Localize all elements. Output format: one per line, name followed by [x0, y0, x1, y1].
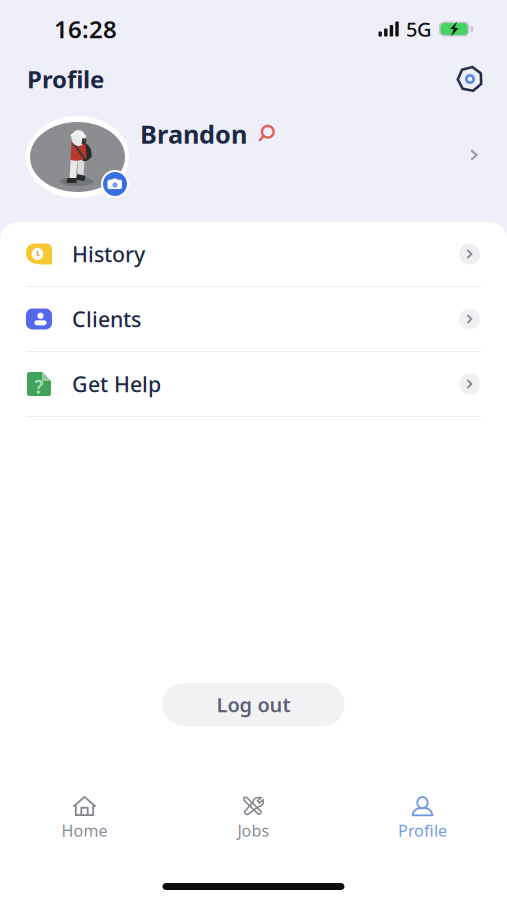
- staticText: Get Help: [72, 370, 161, 398]
- button[interactable]: Profile: [338, 797, 507, 843]
- staticText: 5G: [406, 16, 432, 42]
- staticText: Home: [61, 820, 107, 841]
- staticText: Profile: [398, 820, 447, 841]
- staticText: History: [72, 240, 145, 268]
- button[interactable]: Settings: [450, 59, 490, 99]
- staticText: Jobs: [237, 820, 269, 841]
- button[interactable]: Brandon: [0, 100, 507, 222]
- staticText: 16:28: [54, 13, 117, 45]
- staticText: Log out: [216, 691, 290, 718]
- button[interactable]: Clients: [0, 287, 507, 352]
- button[interactable]: Jobs: [169, 797, 338, 843]
- button[interactable]: History: [0, 222, 507, 287]
- staticText: Clients: [72, 305, 141, 333]
- button[interactable]: Home: [0, 797, 169, 843]
- staticText: Brandon: [140, 117, 247, 151]
- staticText: Profile: [27, 63, 104, 95]
- button[interactable]: Change photo: [101, 170, 129, 198]
- staticText: ?: [34, 374, 43, 399]
- button[interactable]: ?: [0, 352, 507, 417]
- button[interactable]: Log out: [162, 683, 344, 726]
